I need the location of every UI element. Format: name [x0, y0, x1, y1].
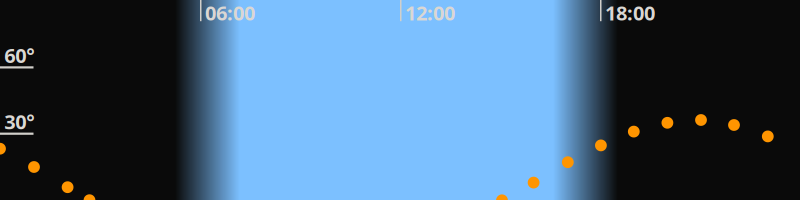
staticText: 60° [4, 42, 34, 68]
staticText: 12:00 [405, 0, 455, 26]
staticText: 06:00 [205, 0, 255, 26]
staticText: 30° [4, 108, 34, 135]
staticText: 18:00 [605, 0, 655, 26]
button[interactable]: Hourly temperature chart [0, 0, 800, 200]
